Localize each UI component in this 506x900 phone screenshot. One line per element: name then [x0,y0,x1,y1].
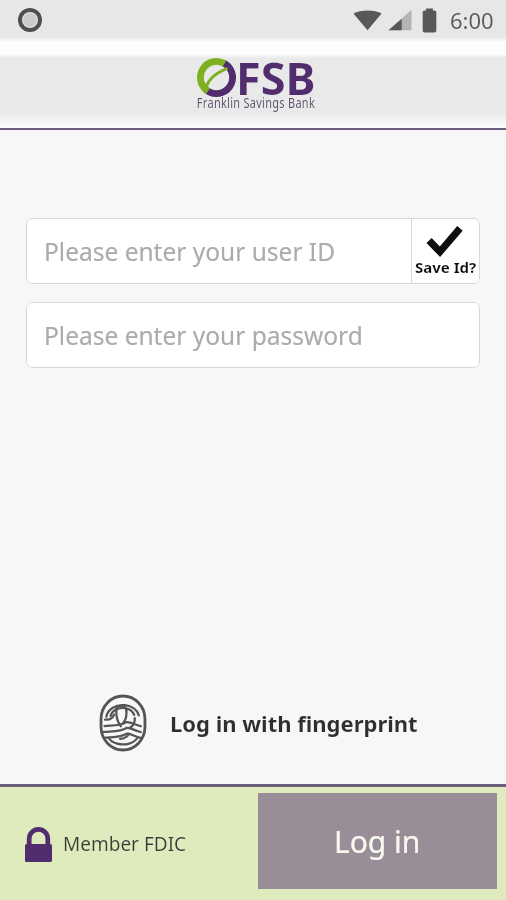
staticText: Save Id? [415,257,477,277]
button[interactable]: Please enter your password [26,302,480,368]
button[interactable]: Member FDIC [0,826,258,862]
staticText: Franklin Savings Bank [197,93,315,111]
staticText: Member FDIC [63,831,187,857]
other: Notification [18,8,42,32]
staticText: Please enter your user ID [44,235,336,268]
staticText: Please enter your password [44,319,363,352]
staticText: FSB [236,47,316,108]
button[interactable]: Please enter your user ID [26,218,411,284]
staticText: 6:00 [450,5,494,35]
button[interactable]: Log in with fingerprint [5,688,506,758]
staticText: Log in [334,821,421,862]
button[interactable]: Log in [258,793,497,889]
staticText: Log in with fingerprint [170,708,418,738]
button[interactable]: Save Id [412,218,480,284]
